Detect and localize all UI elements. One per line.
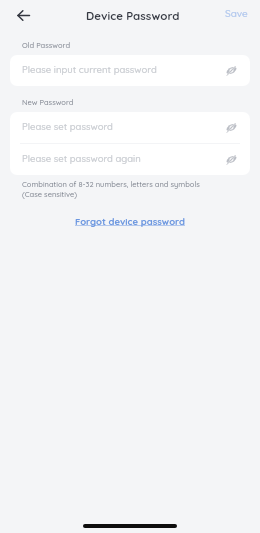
staticText: Please set password again (22, 152, 141, 164)
staticText: Please set password (22, 120, 113, 132)
staticText: Combination of 8-32 numbers, letters and… (22, 179, 200, 199)
button[interactable]: Forgot device password (69, 213, 191, 229)
staticText: Forgot device password (75, 215, 185, 227)
button[interactable]: Toggle password visibility (222, 150, 240, 168)
staticText: Old Password (22, 40, 71, 49)
staticText: New Password (22, 97, 74, 106)
staticText: Save (225, 7, 248, 20)
button[interactable]: Toggle password visibility (222, 118, 240, 136)
button[interactable]: Save (213, 2, 260, 27)
staticText: Device Password (86, 8, 180, 22)
button[interactable]: Toggle password visibility (222, 61, 240, 79)
button[interactable]: Back (9, 1, 37, 29)
staticText: Please input current password (22, 63, 157, 75)
